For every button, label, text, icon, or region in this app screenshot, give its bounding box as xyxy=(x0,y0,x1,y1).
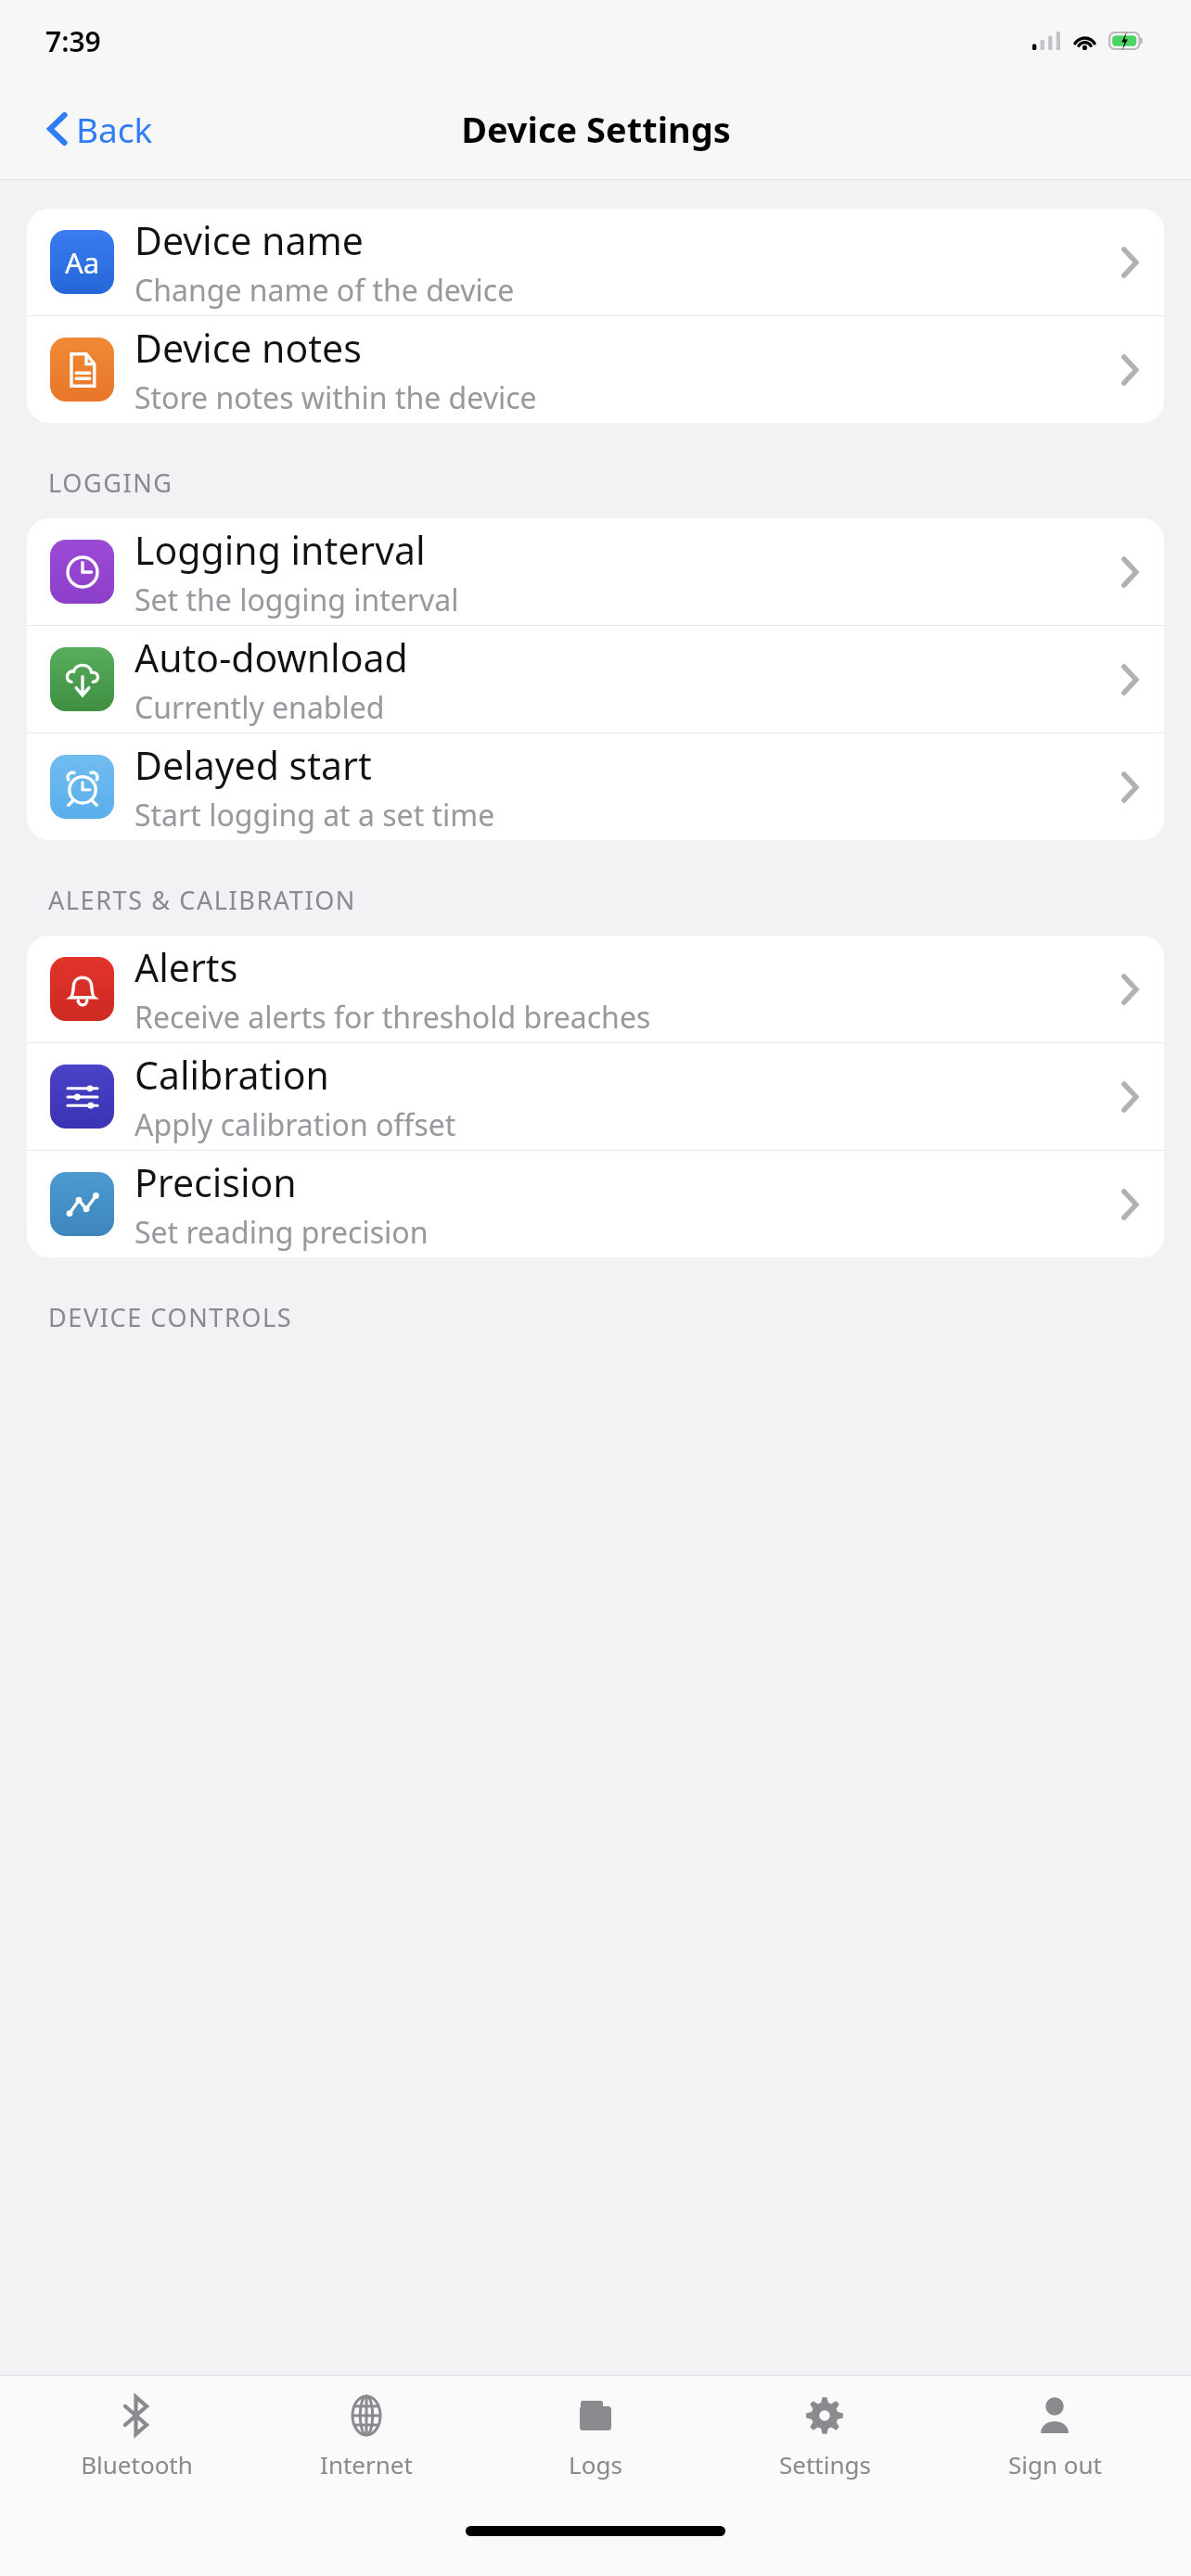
staticText: Apply calibration offset xyxy=(134,1104,456,1145)
button[interactable]: Calibration xyxy=(27,1043,1164,1150)
staticText: Receive alerts for threshold breaches xyxy=(134,997,651,1038)
button[interactable]: Bluetooth xyxy=(44,2392,229,2480)
staticText: Set reading precision xyxy=(134,1212,429,1253)
button[interactable]: Sign out xyxy=(962,2392,1147,2480)
staticText: Precision xyxy=(134,1156,297,1208)
staticText: Sign out xyxy=(1008,2448,1102,2480)
staticText: Change name of the device xyxy=(134,270,515,311)
button[interactable]: Delayed start xyxy=(27,733,1164,840)
staticText: LOGGING xyxy=(48,465,173,500)
staticText: Device name xyxy=(134,214,364,266)
staticText: ALERTS & CALIBRATION xyxy=(48,883,356,917)
staticText: Aa xyxy=(65,243,100,282)
staticText: DEVICE CONTROLS xyxy=(48,1300,293,1334)
button[interactable]: Aa xyxy=(27,209,1164,315)
staticText: Logging interval xyxy=(134,524,426,576)
staticText: Auto-download xyxy=(134,631,408,683)
button[interactable]: Device notes xyxy=(27,316,1164,423)
button[interactable]: Alerts xyxy=(27,936,1164,1042)
staticText: Device Settings xyxy=(461,105,731,153)
staticText: 7:39 xyxy=(45,22,101,60)
button[interactable]: Internet xyxy=(274,2392,459,2480)
staticText: Start logging at a set time xyxy=(134,795,495,835)
staticText: Set the logging interval xyxy=(134,580,459,620)
button[interactable]: Precision xyxy=(27,1151,1164,1257)
staticText: Delayed start xyxy=(134,739,372,791)
staticText: Internet xyxy=(320,2448,413,2480)
staticText: Settings xyxy=(779,2448,871,2480)
button[interactable]: Back xyxy=(41,98,160,159)
button[interactable]: Logs xyxy=(503,2392,688,2480)
staticText: Alerts xyxy=(134,941,238,993)
staticText: Device notes xyxy=(134,322,362,374)
staticText: Store notes within the device xyxy=(134,377,537,418)
staticText: Currently enabled xyxy=(134,687,385,728)
staticText: Bluetooth xyxy=(81,2448,193,2480)
button[interactable]: Logging interval xyxy=(27,518,1164,625)
staticText: Logs xyxy=(569,2448,622,2480)
button[interactable]: Settings xyxy=(732,2392,917,2480)
button[interactable]: Auto-download xyxy=(27,626,1164,733)
staticText: Calibration xyxy=(134,1049,329,1101)
staticText: Back xyxy=(76,106,153,152)
